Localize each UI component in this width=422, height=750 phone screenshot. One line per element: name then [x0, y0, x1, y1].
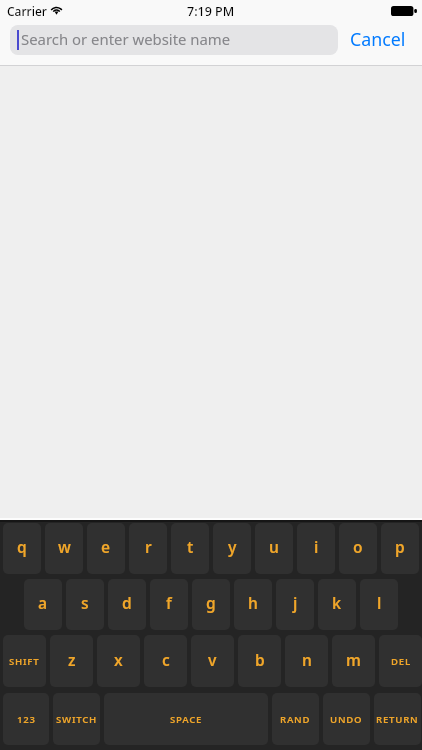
staticText: 123	[17, 713, 36, 726]
button[interactable]: g	[192, 579, 230, 630]
staticText: w	[58, 536, 71, 557]
button[interactable]: x	[97, 635, 140, 687]
button[interactable]: Cancel	[341, 25, 415, 55]
staticText: x	[114, 649, 123, 670]
staticText: Carrier	[7, 3, 47, 19]
button[interactable]: e	[87, 523, 125, 574]
button[interactable]: w	[45, 523, 83, 574]
button[interactable]: n	[285, 635, 328, 687]
button[interactable]: j	[276, 579, 314, 630]
staticText: v	[208, 649, 217, 670]
button[interactable]: b	[238, 635, 281, 687]
button[interactable]: SPACE	[104, 693, 268, 745]
staticText: g	[206, 592, 216, 613]
button[interactable]: Search or enter website name	[10, 25, 338, 55]
staticText: h	[248, 592, 258, 613]
staticText: 7:19 PM	[187, 3, 235, 20]
staticText: r	[145, 536, 152, 557]
staticText: u	[269, 536, 279, 557]
button[interactable]: SWITCH	[53, 693, 100, 745]
staticText: i	[314, 536, 319, 557]
staticText: e	[101, 536, 111, 557]
button[interactable]: RAND	[272, 693, 319, 745]
staticText: f	[166, 592, 172, 613]
button[interactable]: i	[297, 523, 335, 574]
button[interactable]: p	[381, 523, 419, 574]
staticText: b	[255, 649, 265, 670]
button[interactable]: h	[234, 579, 272, 630]
button[interactable]: m	[332, 635, 375, 687]
staticText: t	[187, 536, 194, 557]
button[interactable]: q	[3, 523, 41, 574]
button[interactable]: s	[66, 579, 104, 630]
button[interactable]: l	[360, 579, 398, 630]
button[interactable]: y	[213, 523, 251, 574]
button[interactable]: o	[339, 523, 377, 574]
staticText: z	[68, 649, 76, 670]
staticText: SHIFT	[9, 655, 40, 668]
button[interactable]: a	[24, 579, 62, 630]
button[interactable]: 123	[3, 693, 49, 745]
button[interactable]: v	[191, 635, 234, 687]
staticText: UNDO	[330, 713, 363, 726]
staticText: d	[122, 592, 132, 613]
button[interactable]: c	[144, 635, 187, 687]
button[interactable]: z	[50, 635, 93, 687]
staticText: j	[293, 592, 298, 613]
button[interactable]: d	[108, 579, 146, 630]
button[interactable]: UNDO	[323, 693, 370, 745]
button[interactable]: u	[255, 523, 293, 574]
staticText: c	[162, 649, 170, 670]
staticText: Cancel	[350, 27, 406, 51]
staticText: y	[228, 536, 237, 557]
button[interactable]: RETURN	[374, 693, 421, 745]
staticText: s	[81, 592, 89, 613]
staticText: SPACE	[170, 713, 203, 726]
staticText: Search or enter website name	[21, 29, 231, 49]
button[interactable]: t	[171, 523, 209, 574]
staticText: k	[332, 592, 342, 613]
button[interactable]: DEL	[379, 635, 422, 687]
staticText: a	[38, 592, 48, 613]
button[interactable]: f	[150, 579, 188, 630]
staticText: DEL	[391, 655, 411, 668]
button[interactable]: SHIFT	[3, 635, 46, 687]
staticText: q	[17, 536, 27, 557]
staticText: SWITCH	[56, 713, 98, 726]
staticText: o	[353, 536, 363, 557]
staticText: n	[302, 649, 312, 670]
staticText: p	[395, 536, 405, 557]
staticText: RAND	[280, 713, 311, 726]
staticText: m	[346, 649, 361, 670]
staticText: l	[377, 592, 382, 613]
staticText: RETURN	[376, 713, 419, 726]
button[interactable]: r	[129, 523, 167, 574]
button[interactable]: k	[318, 579, 356, 630]
